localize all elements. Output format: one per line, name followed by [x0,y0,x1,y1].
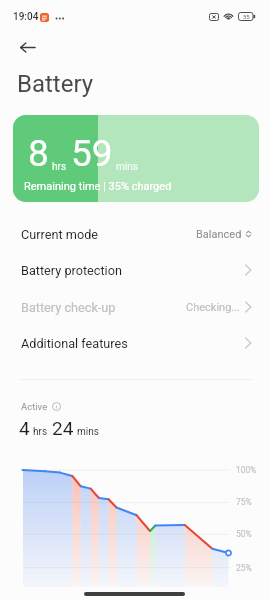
staticText: 75% [236,497,252,507]
staticText: 24 [52,417,74,439]
button[interactable]: Additional features [0,325,270,361]
staticText: 4 [19,417,30,439]
staticText: Remaining time | 35% charged [24,180,172,193]
staticText: Checking... [186,301,241,314]
staticText: 35 [243,13,250,20]
button[interactable]: Back [12,32,42,62]
staticText: Additional features [21,336,128,351]
button[interactable]: Battery check-up [0,289,270,325]
staticText: Battery check-up [21,300,116,315]
button[interactable]: Current mode [0,216,270,252]
button[interactable]: 8 [13,115,259,202]
staticText: 59 [71,132,113,175]
staticText: Battery protection [21,263,122,278]
staticText: Current mode [21,227,99,242]
staticText: 25% [236,563,252,573]
staticText: Balanced [196,228,242,241]
button[interactable]: Battery protection [0,252,270,288]
staticText: mins [77,426,99,438]
staticText: 19:04 [13,11,39,23]
staticText: mins [116,161,138,173]
staticText: 100% [236,465,257,475]
staticText: 50% [236,529,252,539]
staticText: Active [21,401,48,412]
staticText: 8 [28,132,49,175]
staticText: Battery [17,70,94,98]
staticText: hrs [52,161,67,173]
staticText: hrs [33,426,48,438]
